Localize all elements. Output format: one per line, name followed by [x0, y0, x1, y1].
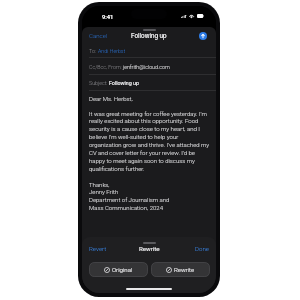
staticText: Following up	[109, 80, 139, 86]
staticText: Andi Herbst	[98, 48, 126, 54]
button[interactable]: Send	[199, 32, 207, 40]
button[interactable]: Rewrite	[151, 262, 210, 277]
staticText: Cancel	[89, 32, 108, 39]
staticText: To:	[89, 48, 98, 54]
staticText: Revert	[89, 245, 107, 252]
staticText: Cc/Bcc, From:	[89, 64, 123, 70]
button[interactable]: Done	[191, 244, 216, 253]
staticText: Rewrite	[139, 245, 160, 252]
staticText: Following up	[131, 32, 167, 39]
staticText: Rewrite	[174, 266, 195, 273]
staticText: Subject:	[89, 80, 109, 86]
button[interactable]: Cancel	[82, 31, 112, 40]
button[interactable]: Revert	[82, 244, 111, 253]
staticText: 9:41	[102, 14, 114, 21]
staticText: Dear Ms. Herbst,	[89, 95, 133, 102]
staticText: Done	[195, 245, 209, 252]
staticText: jenfrith@icloud.com	[123, 64, 170, 70]
staticText: Original	[112, 266, 133, 273]
staticText: It was great meeting for coffee yesterda…	[89, 110, 210, 173]
staticText: Thanks, Jenny Frith Department of Journa…	[89, 181, 170, 212]
button[interactable]: Original	[89, 262, 148, 277]
